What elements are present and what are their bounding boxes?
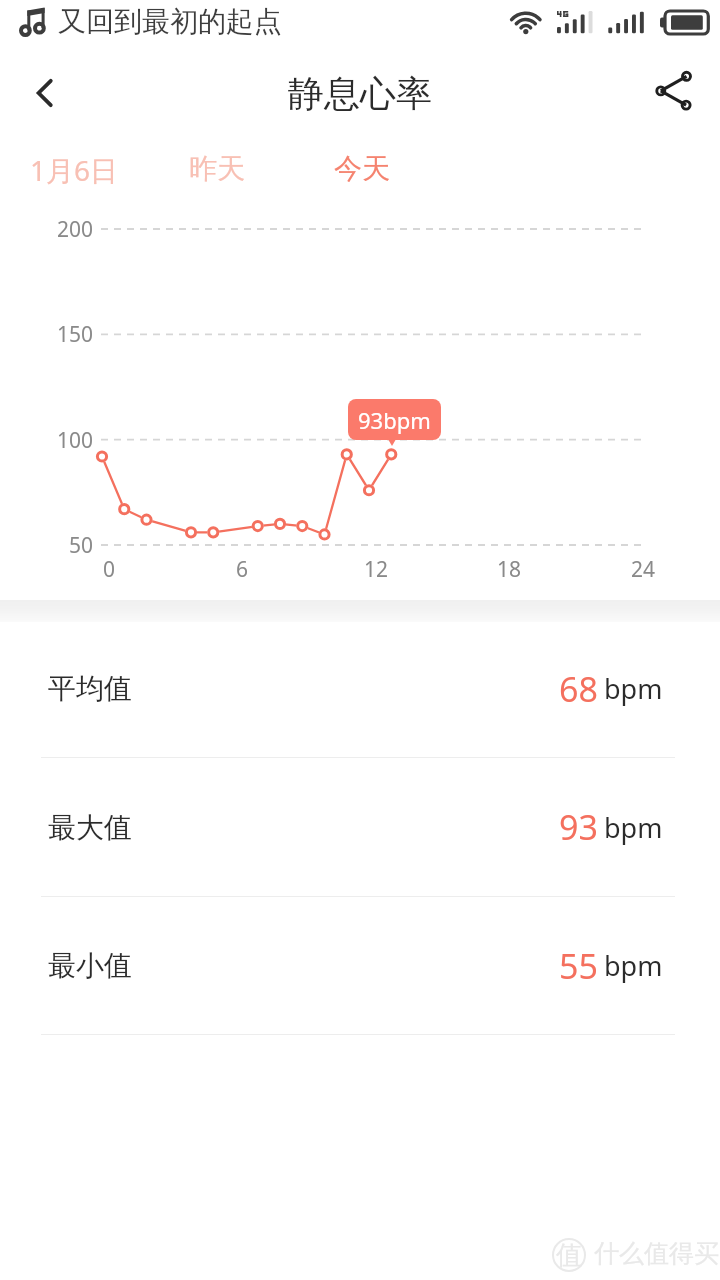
staticText: 18: [469, 555, 549, 584]
staticText: 什么值得买: [594, 1238, 719, 1269]
staticText: 又回到最初的起点: [58, 4, 282, 39]
button[interactable]: 最大值: [0, 758, 720, 897]
staticText: 值: [556, 1239, 582, 1272]
button[interactable]: 昨天: [177, 137, 257, 200]
staticText: 93: [559, 804, 598, 850]
button[interactable]: 今天: [322, 137, 402, 200]
staticText: 150: [0, 320, 93, 349]
staticText: 24: [603, 555, 683, 584]
button[interactable]: Back: [16, 64, 74, 122]
staticText: 50: [0, 531, 93, 560]
staticText: 200: [0, 215, 93, 244]
staticText: bpm: [604, 670, 663, 707]
staticText: bpm: [604, 947, 663, 984]
button[interactable]: Share: [650, 65, 710, 117]
staticText: 68: [559, 666, 598, 712]
staticText: 1月6日: [30, 151, 119, 189]
staticText: 55: [559, 943, 598, 989]
staticText: 93bpm: [358, 405, 431, 435]
staticText: 最大值: [48, 810, 132, 845]
staticText: 最小值: [48, 948, 132, 983]
staticText: 0: [69, 555, 149, 584]
staticText: 昨天: [189, 151, 245, 186]
staticText: 6: [202, 555, 282, 584]
staticText: 平均值: [48, 671, 132, 706]
staticText: 静息心率: [288, 71, 432, 116]
staticText: 今天: [334, 151, 390, 186]
button[interactable]: 1月6日: [18, 137, 131, 203]
button[interactable]: 最小值: [0, 897, 720, 1035]
staticText: 100: [0, 426, 93, 455]
staticText: bpm: [604, 809, 663, 846]
button[interactable]: 平均值: [0, 620, 720, 758]
staticText: 12: [336, 555, 416, 584]
